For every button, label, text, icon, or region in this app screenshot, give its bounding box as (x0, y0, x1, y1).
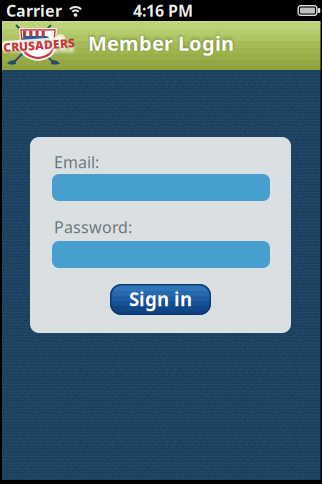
staticText: Sign in (129, 287, 192, 311)
staticText: Carrier (6, 0, 62, 21)
staticText: Email: (54, 151, 99, 173)
staticText: Member Login (88, 30, 234, 56)
button[interactable] (52, 241, 270, 268)
button[interactable] (52, 174, 270, 201)
button[interactable]: Sign in (110, 284, 211, 315)
staticText: Password: (54, 216, 132, 238)
staticText: CRUSADERS (3, 37, 75, 53)
staticText: 4:16 PM (133, 0, 193, 21)
